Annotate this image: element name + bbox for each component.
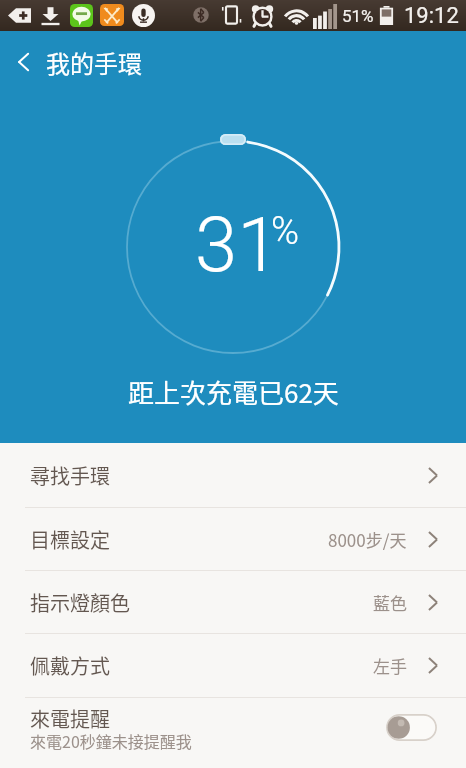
button[interactable]: 佩戴方式 bbox=[0, 634, 466, 697]
button[interactable]: 目標設定 bbox=[0, 508, 466, 570]
staticText: 8000步/天 bbox=[328, 527, 407, 552]
staticText: 51% bbox=[342, 6, 374, 26]
staticText: 來電提醒 bbox=[30, 704, 110, 733]
button[interactable]: Back bbox=[3, 42, 43, 82]
staticText: 左手 bbox=[373, 653, 407, 678]
staticText: 19:12 bbox=[404, 3, 459, 29]
staticText: 距上次充電已62天 bbox=[128, 373, 339, 411]
button[interactable]: 尋找手環 bbox=[0, 443, 466, 507]
button[interactable]: 來電提醒 bbox=[0, 698, 466, 768]
button[interactable]: 指示燈顏色 bbox=[0, 571, 466, 633]
button[interactable]: Call reminder toggle bbox=[386, 714, 437, 741]
staticText: 31 bbox=[195, 200, 280, 289]
staticText: 藍色 bbox=[373, 590, 407, 615]
staticText: 指示燈顏色 bbox=[30, 588, 130, 617]
staticText: 尋找手環 bbox=[30, 461, 110, 490]
staticText: 佩戴方式 bbox=[30, 651, 110, 680]
staticText: % bbox=[271, 209, 300, 254]
staticText: 目標設定 bbox=[30, 525, 110, 554]
staticText: 我的手環 bbox=[46, 45, 142, 80]
staticText: 來電20秒鐘未接提醒我 bbox=[30, 729, 192, 752]
